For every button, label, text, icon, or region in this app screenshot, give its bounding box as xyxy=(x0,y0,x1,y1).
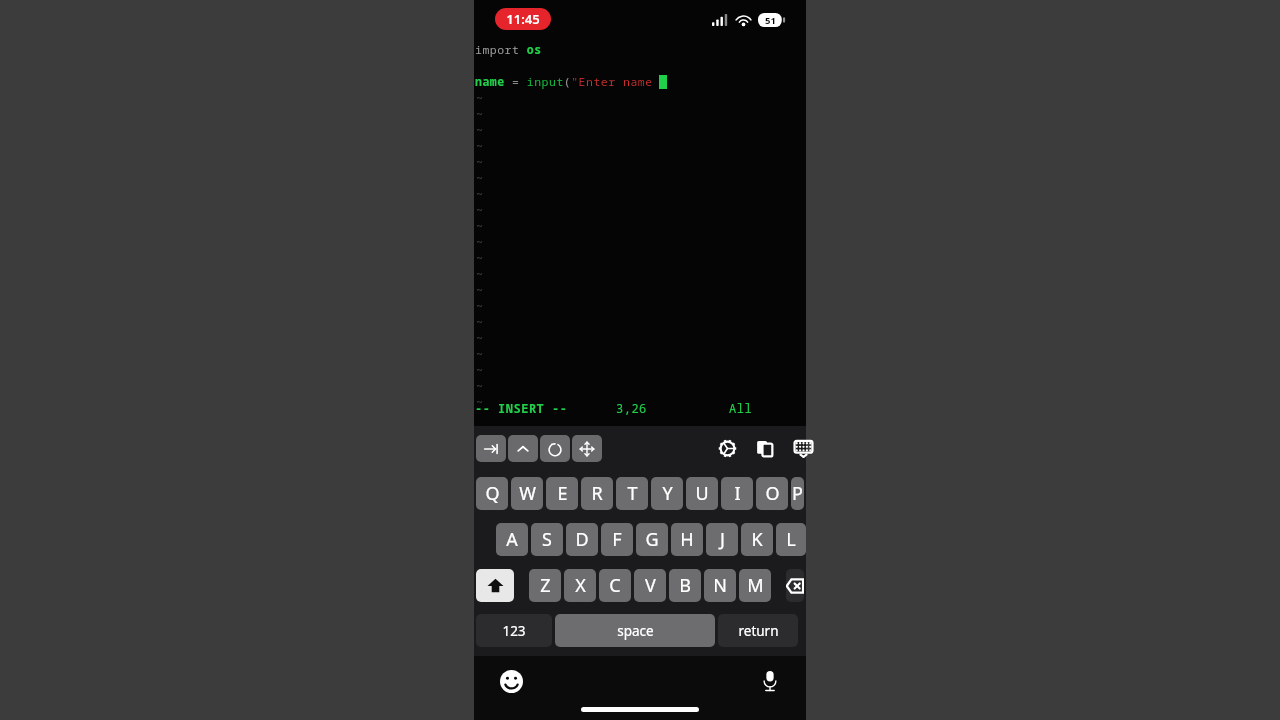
staticText: G xyxy=(645,527,659,552)
staticText: I xyxy=(734,481,741,506)
staticText: Y xyxy=(662,481,673,506)
staticText: 11:45 xyxy=(506,10,540,28)
staticText: ~ xyxy=(476,234,484,250)
staticText: Z xyxy=(540,573,551,598)
staticText: import os xyxy=(475,42,542,58)
staticText: E xyxy=(557,481,568,506)
staticText: ~ xyxy=(476,378,484,394)
staticText: ~ xyxy=(476,266,484,282)
button[interactable]: Emoji xyxy=(498,668,524,694)
staticText: T xyxy=(627,481,638,506)
staticText: Q xyxy=(485,481,500,506)
staticText: ~ xyxy=(476,298,484,314)
staticText: U xyxy=(695,481,709,506)
button[interactable]: D xyxy=(566,523,598,556)
button[interactable]: Arrow keys xyxy=(572,435,602,462)
button[interactable]: B xyxy=(669,569,701,602)
staticText: A xyxy=(506,527,518,552)
button[interactable]: Dictation xyxy=(757,668,783,694)
staticText: ~ xyxy=(476,122,484,138)
button[interactable]: R xyxy=(581,477,613,510)
staticText: W xyxy=(519,481,536,506)
staticText: 3,26 xyxy=(616,400,647,416)
button[interactable]: A xyxy=(496,523,528,556)
staticText: ~ xyxy=(476,202,484,218)
staticText: ~ xyxy=(476,90,484,106)
button[interactable]: Tab xyxy=(476,435,506,462)
staticText: -- INSERT -- xyxy=(475,400,568,416)
button[interactable]: O xyxy=(756,477,788,510)
staticText: S xyxy=(542,527,552,552)
staticText: ~ xyxy=(476,330,484,346)
staticText: K xyxy=(751,527,763,552)
button[interactable]: W xyxy=(511,477,543,510)
staticText: D xyxy=(575,527,589,552)
button[interactable]: S xyxy=(531,523,563,556)
button[interactable]: G xyxy=(636,523,668,556)
staticText: B xyxy=(679,573,691,598)
button[interactable]: X xyxy=(564,569,596,602)
staticText: ~ xyxy=(476,282,484,298)
button[interactable]: C xyxy=(599,569,631,602)
button[interactable]: K xyxy=(741,523,773,556)
staticText: space xyxy=(617,622,654,640)
staticText: ~ xyxy=(476,314,484,330)
button[interactable]: U xyxy=(686,477,718,510)
button[interactable]: H xyxy=(671,523,703,556)
button[interactable]: V xyxy=(634,569,666,602)
button[interactable]: Y xyxy=(651,477,683,510)
button[interactable]: space xyxy=(555,614,715,647)
button[interactable]: Control xyxy=(508,435,538,462)
button[interactable]: T xyxy=(616,477,648,510)
staticText: O xyxy=(765,481,780,506)
staticText: ~ xyxy=(476,138,484,154)
staticText: return xyxy=(738,622,779,640)
staticText: C xyxy=(609,573,621,598)
staticText: 123 xyxy=(502,622,526,640)
button[interactable]: Paste xyxy=(752,435,778,461)
button[interactable]: Hide keyboard xyxy=(790,435,816,461)
staticText: L xyxy=(786,527,796,552)
staticText: M xyxy=(747,573,764,598)
button[interactable]: M xyxy=(739,569,771,602)
staticText: R xyxy=(591,481,603,506)
button[interactable]: I xyxy=(721,477,753,510)
staticText: All xyxy=(729,400,753,416)
button[interactable]: F xyxy=(601,523,633,556)
staticText: V xyxy=(645,573,656,598)
button[interactable]: 123 xyxy=(476,614,552,647)
button[interactable]: Settings xyxy=(714,435,740,461)
staticText: ~ xyxy=(476,170,484,186)
staticText: ~ xyxy=(476,186,484,202)
staticText: ~ xyxy=(476,106,484,122)
staticText: H xyxy=(680,527,694,552)
button[interactable]: Q xyxy=(476,477,508,510)
button[interactable]: E xyxy=(546,477,578,510)
staticText: F xyxy=(612,527,622,552)
staticText: ~ xyxy=(476,218,484,234)
button[interactable]: J xyxy=(706,523,738,556)
button[interactable]: return xyxy=(718,614,798,647)
staticText: ~ xyxy=(476,394,484,410)
button[interactable]: N xyxy=(704,569,736,602)
staticText: N xyxy=(713,573,727,598)
staticText: name = input("Enter name xyxy=(475,74,660,90)
staticText: J xyxy=(720,527,725,552)
button[interactable]: Shift xyxy=(476,569,514,602)
button[interactable]: L xyxy=(776,523,806,556)
button[interactable]: Undo xyxy=(540,435,570,462)
staticText: ~ xyxy=(476,154,484,170)
staticText: ~ xyxy=(476,346,484,362)
staticText: P xyxy=(792,481,803,506)
staticText: ~ xyxy=(476,250,484,266)
staticText: ~ xyxy=(476,362,484,378)
button[interactable]: Z xyxy=(529,569,561,602)
staticText: X xyxy=(575,573,586,598)
button[interactable]: Backspace xyxy=(786,569,804,602)
button[interactable]: P xyxy=(791,477,804,510)
staticText: 51 xyxy=(765,14,776,27)
